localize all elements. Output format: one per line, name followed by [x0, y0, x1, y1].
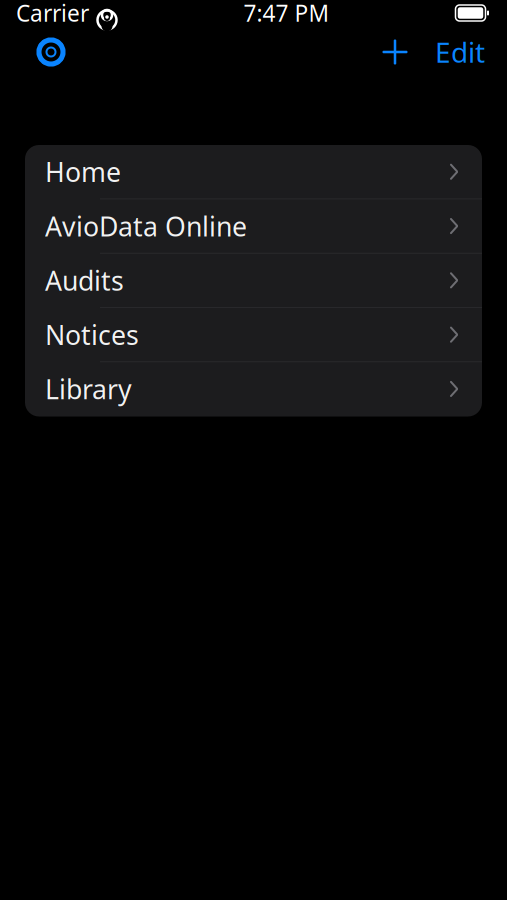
staticText: Carrier — [16, 0, 89, 28]
button[interactable]: Library — [25, 362, 482, 416]
staticText: Home — [45, 154, 121, 189]
button[interactable]: Settings — [29, 30, 73, 74]
button[interactable]: Edit — [435, 30, 485, 74]
staticText: 7:47 PM — [243, 0, 329, 28]
button[interactable]: AvioData Online — [25, 199, 482, 254]
button[interactable]: Audits — [25, 254, 482, 308]
staticText: Notices — [45, 317, 139, 352]
button[interactable]: Home — [25, 145, 482, 199]
button[interactable]: Notices — [25, 308, 482, 362]
staticText: Edit — [435, 33, 485, 71]
staticText: AvioData Online — [45, 208, 247, 244]
button[interactable]: Add — [373, 30, 417, 74]
staticText: Audits — [45, 263, 124, 298]
staticText: Library — [45, 371, 132, 407]
